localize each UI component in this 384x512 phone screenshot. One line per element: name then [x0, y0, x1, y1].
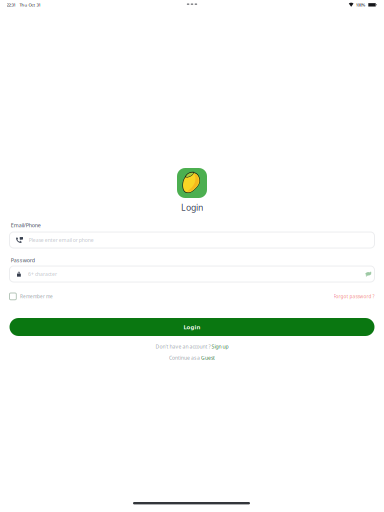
staticText: Email/Phone	[11, 221, 41, 229]
button[interactable]: Please enter email or phone	[9, 232, 374, 248]
staticText: Please enter email or phone	[29, 236, 94, 243]
button[interactable]: Guest	[201, 354, 215, 361]
staticText: Sign up	[211, 343, 228, 350]
staticText: Forgot password ?	[333, 293, 374, 300]
staticText: Continue as a	[169, 354, 201, 361]
button[interactable]: Remember me	[9, 293, 53, 300]
staticText: Login	[183, 323, 200, 331]
button[interactable]: Sign up	[211, 343, 228, 350]
button[interactable]: Login	[9, 318, 374, 336]
staticText: Remember me	[20, 293, 53, 300]
staticText: 6+ character	[28, 270, 57, 277]
staticText: 22:31	[7, 2, 16, 8]
staticText: Thu Oct 31	[20, 2, 41, 8]
staticText: Login	[181, 202, 203, 213]
staticText: 100%	[356, 2, 366, 8]
staticText: Don't have an account ?	[155, 343, 211, 350]
staticText: Password	[11, 256, 35, 264]
staticText: Guest	[201, 354, 215, 361]
button[interactable]: Forgot password ?	[333, 293, 374, 300]
button[interactable]: 6+ character	[9, 266, 374, 282]
